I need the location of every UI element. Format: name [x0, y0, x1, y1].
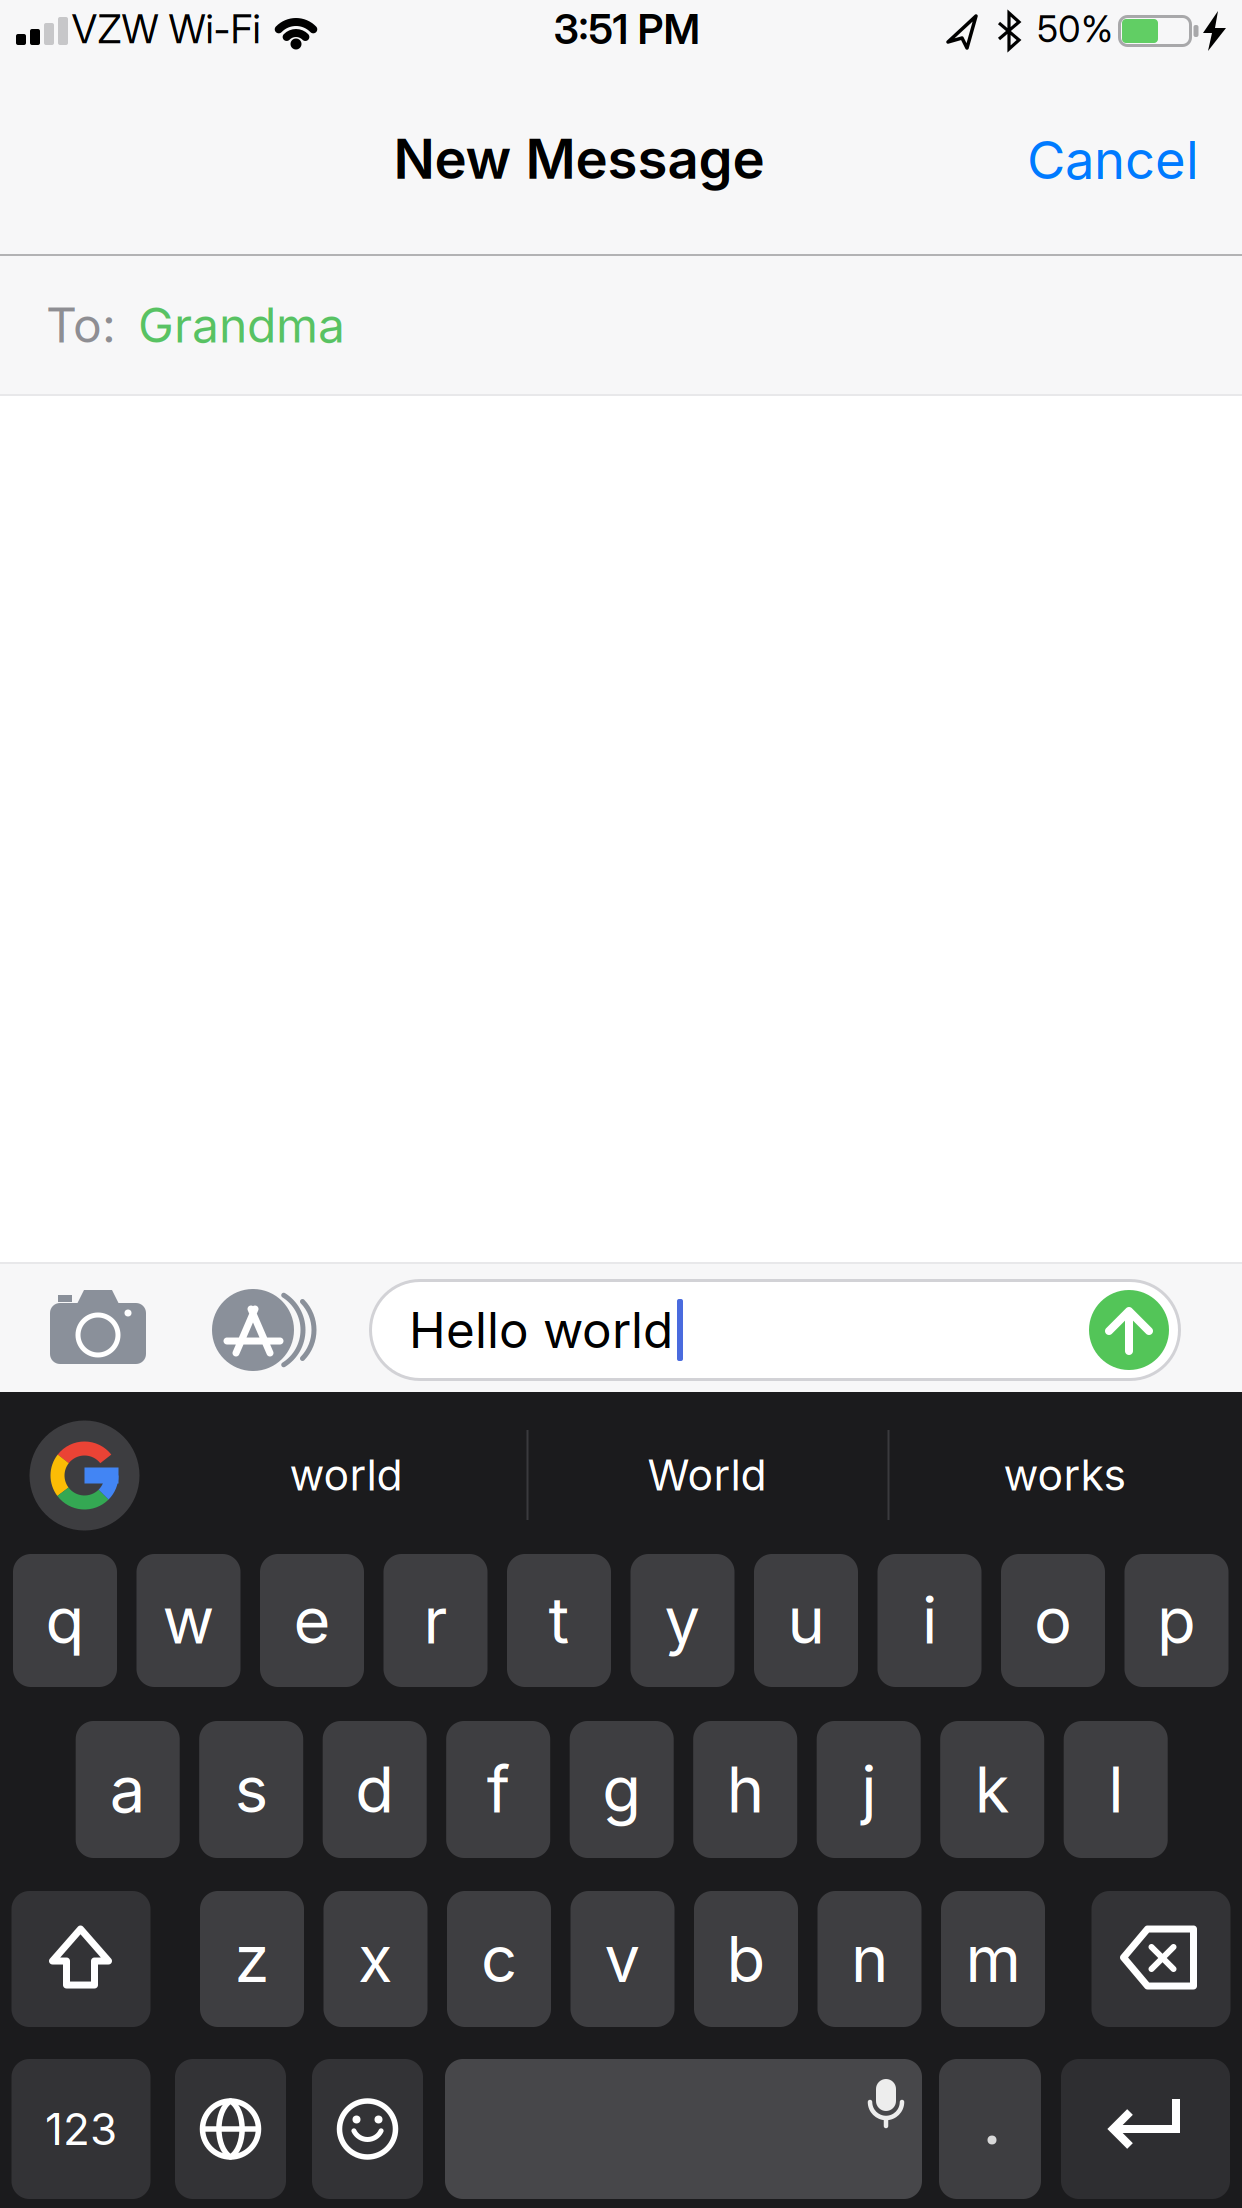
button[interactable]: g [570, 1721, 674, 1858]
button[interactable]: Return [1061, 2059, 1230, 2199]
button[interactable]: o [1001, 1554, 1105, 1687]
button[interactable]: q [13, 1554, 117, 1687]
staticText: World [647, 1449, 766, 1501]
button[interactable]: Period [939, 2059, 1041, 2199]
button[interactable]: j [817, 1721, 921, 1858]
button[interactable]: Switch keyboard [175, 2059, 286, 2199]
button[interactable]: Google search [29, 1420, 139, 1530]
button[interactable]: Shift [11, 1891, 150, 2027]
staticText: New Message [393, 126, 764, 192]
staticText: To: [46, 296, 116, 354]
button[interactable]: Delete [1091, 1891, 1230, 2027]
button[interactable]: m [941, 1891, 1045, 2027]
staticText: q [45, 1582, 84, 1659]
staticText: k [975, 1751, 1010, 1828]
button[interactable]: p [1124, 1554, 1228, 1687]
staticText: m [965, 1921, 1020, 1997]
staticText: Cancel [1027, 128, 1199, 192]
staticText: z [234, 1921, 269, 1997]
button[interactable]: world [161, 1420, 531, 1530]
button[interactable]: r [383, 1554, 487, 1687]
staticText: l [1108, 1751, 1123, 1828]
button[interactable]: y [630, 1554, 734, 1687]
staticText: world [289, 1449, 402, 1501]
staticText: 123 [45, 2102, 117, 2156]
button[interactable]: z [200, 1891, 304, 2027]
staticText: a [110, 1751, 146, 1828]
staticText: v [604, 1921, 640, 1997]
button[interactable]: u [754, 1554, 858, 1687]
staticText: VZW Wi-Fi [71, 5, 260, 53]
button[interactable]: Emoji [312, 2059, 423, 2199]
staticText: d [355, 1751, 394, 1828]
button[interactable]: iMessage apps [203, 1285, 313, 1375]
button[interactable]: Camera [38, 1280, 158, 1376]
staticText: p [1157, 1582, 1196, 1659]
staticText: works [1003, 1449, 1126, 1501]
staticText: f [487, 1751, 510, 1828]
staticText: j [861, 1751, 876, 1828]
button[interactable]: Message field [369, 1279, 1181, 1381]
button[interactable]: Cancel [1008, 110, 1218, 210]
button[interactable]: To: [0, 256, 1242, 394]
staticText: b [726, 1921, 765, 1997]
staticText: n [851, 1921, 888, 1997]
staticText: g [602, 1751, 641, 1828]
button[interactable]: d [323, 1721, 427, 1858]
staticText: 3:51 PM [553, 4, 700, 54]
button[interactable]: 123 [11, 2059, 150, 2199]
button[interactable]: s [199, 1721, 303, 1858]
button[interactable]: Space [445, 2059, 922, 2199]
staticText: t [548, 1582, 569, 1659]
button[interactable]: a [76, 1721, 180, 1858]
button[interactable]: works [895, 1420, 1235, 1530]
button[interactable]: Send [1089, 1290, 1169, 1370]
staticText: c [481, 1921, 517, 1997]
staticText: s [235, 1751, 268, 1828]
button[interactable]: b [694, 1891, 798, 2027]
button[interactable]: t [507, 1554, 611, 1687]
staticText: x [358, 1921, 393, 1997]
button[interactable]: c [447, 1891, 551, 2027]
button[interactable]: e [260, 1554, 364, 1687]
button[interactable]: f [446, 1721, 550, 1858]
staticText: Hello world [409, 1300, 673, 1360]
button[interactable]: n [817, 1891, 921, 2027]
staticText: e [293, 1582, 330, 1659]
button[interactable]: w [136, 1554, 240, 1687]
button[interactable]: i [877, 1554, 981, 1687]
staticText: h [727, 1751, 764, 1828]
button[interactable]: l [1064, 1721, 1168, 1858]
button[interactable]: h [693, 1721, 797, 1858]
button[interactable]: World [532, 1420, 882, 1530]
staticText: y [664, 1582, 700, 1659]
button[interactable]: k [940, 1721, 1044, 1858]
button[interactable]: v [570, 1891, 674, 2027]
staticText: r [423, 1582, 447, 1659]
staticText: Grandma [138, 296, 345, 354]
staticText: u [787, 1582, 824, 1659]
button[interactable]: x [323, 1891, 427, 2027]
staticText: o [1034, 1582, 1072, 1659]
staticText: i [922, 1582, 937, 1659]
staticText: w [162, 1582, 214, 1659]
staticText: 50% [1037, 7, 1113, 51]
